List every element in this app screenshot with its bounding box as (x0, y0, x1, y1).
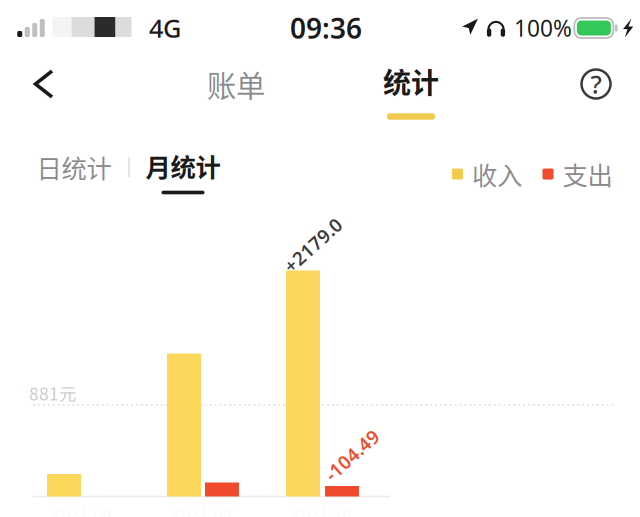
staticText: 881元 (29, 380, 76, 406)
staticText: ? (590, 67, 601, 101)
button[interactable]: 支出 (542, 156, 612, 192)
button[interactable]: 日统计 (22, 146, 126, 188)
button[interactable]: 统计 (355, 63, 467, 125)
staticText: 支出 (562, 156, 612, 192)
staticText: 账单 (207, 63, 265, 105)
staticText: 月统计 (145, 147, 220, 184)
staticText: 收入 (472, 156, 522, 192)
button[interactable]: 月统计 (131, 146, 235, 198)
button[interactable]: 账单 (180, 58, 292, 110)
button[interactable]: 收入 (452, 156, 522, 192)
button[interactable]: Back (20, 58, 68, 110)
staticText: 4G (149, 11, 181, 45)
staticText: 100% (514, 13, 572, 43)
staticText: +2179.0 (277, 233, 348, 257)
staticText: 统计 (383, 61, 439, 101)
button[interactable]: Help (568, 57, 624, 111)
staticText: -104.49 (319, 443, 385, 467)
staticText: 09:36 (290, 9, 362, 47)
staticText: 日统计 (36, 149, 111, 185)
